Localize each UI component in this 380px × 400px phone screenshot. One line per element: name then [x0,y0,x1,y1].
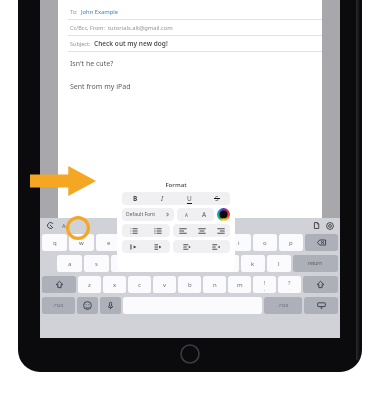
button[interactable]: a [57,255,82,272]
button[interactable]: Text color [217,208,230,221]
staticText: return [308,260,323,267]
button[interactable]: Align left [173,224,192,237]
button[interactable]: t [149,234,173,251]
button[interactable]: Home [180,344,200,364]
button[interactable]: w [69,234,94,251]
button[interactable]: Dictation [100,297,121,314]
staticText: U [187,194,192,203]
staticText: B [133,194,138,203]
button[interactable]: return [293,255,338,272]
staticText: u [211,239,215,247]
button[interactable]: Default Font [122,208,174,221]
button[interactable]: y [175,234,199,251]
button[interactable]: p [279,234,303,251]
button[interactable]: Cc/Bcc, From: [58,20,322,35]
staticText: .?123 [53,303,64,309]
button[interactable]: s [84,255,109,272]
button[interactable]: Decrease font size [177,208,195,221]
button[interactable]: Camera [323,220,337,231]
button[interactable]: b [178,276,201,293]
button[interactable]: z [78,276,101,293]
staticText: I [161,194,164,203]
staticText: r [134,239,137,247]
button[interactable]: Increase font size [195,208,214,221]
staticText: c [138,281,141,289]
button[interactable]: B [122,192,149,205]
button[interactable]: ? [278,276,301,293]
staticText: o [263,239,267,247]
button[interactable]: Subject: [58,36,322,51]
staticText: w [79,239,84,247]
staticText: A [202,210,207,219]
button[interactable]: i [227,234,251,251]
button[interactable]: Indent [201,240,230,253]
staticText: Default Font [126,211,155,218]
button[interactable]: Underline [176,192,203,205]
button[interactable]: Strikethrough [203,192,230,205]
button[interactable]: c [128,276,151,293]
staticText: q [53,239,57,247]
button[interactable]: ! [253,276,276,293]
staticText: A [185,212,188,218]
button[interactable]: Bulleted list [122,224,146,237]
button[interactable]: k [241,255,265,272]
staticText: b [188,281,192,289]
button[interactable]: Backspace [305,234,338,251]
button[interactable]: Emoji [77,297,98,314]
button[interactable]: n [203,276,226,293]
staticText: s [95,260,98,268]
button[interactable]: u [201,234,225,251]
button[interactable]: Shift right [303,276,338,293]
button[interactable]: x [103,276,126,293]
button[interactable]: v [153,276,176,293]
button[interactable]: Hide keyboard [304,297,338,314]
staticText: John Example [81,8,119,16]
staticText: ! [264,279,266,286]
button[interactable]: Align center [192,224,211,237]
button[interactable]: Outdent [173,240,201,253]
staticText: p [289,239,293,247]
staticText: x [113,281,117,289]
button[interactable]: Shift [42,276,76,293]
staticText: Sent from my iPad [70,82,131,92]
button[interactable]: Numbered list [146,224,170,237]
button[interactable]: Align right [211,224,230,237]
button[interactable]: To: [58,4,322,19]
staticText: m [237,281,243,289]
button[interactable]: l [267,255,291,272]
button[interactable]: r [123,234,147,251]
button[interactable]: Format [57,220,73,231]
button[interactable]: .?123 [264,297,302,314]
button[interactable]: d [111,255,135,272]
staticText: Subject: [70,40,91,47]
staticText: l [278,260,280,268]
staticText: He's [185,222,196,229]
staticText: S [215,194,219,203]
button[interactable]: j [215,255,239,272]
button[interactable]: o [253,234,277,251]
button[interactable]: I [149,192,176,205]
button[interactable]: Decrease indent [122,240,146,253]
staticText: e [107,239,111,247]
button[interactable]: Attach document [309,220,323,231]
staticText: Aa [62,222,69,229]
button[interactable]: Undo [43,220,57,231]
button[interactable]: m [228,276,251,293]
staticText: Cc/Bcc, From: [70,24,105,31]
button[interactable]: Increase indent [146,240,170,253]
button[interactable]: Format Aa [66,216,90,240]
staticText: n [213,281,217,289]
button[interactable]: .?123 [42,297,75,314]
button[interactable]: q [42,234,67,251]
staticText: , [264,286,266,291]
button[interactable]: e [96,234,121,251]
